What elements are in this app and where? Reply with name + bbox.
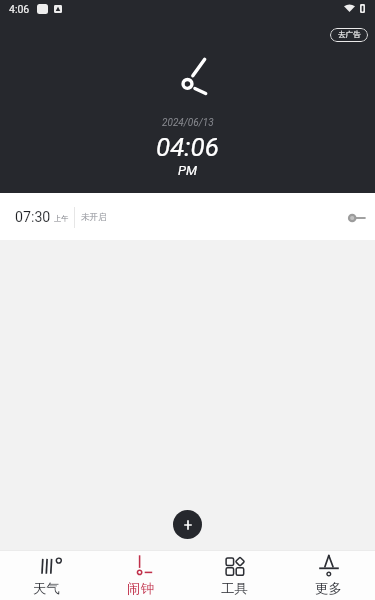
button[interactable]: 天气 (0, 551, 93, 600)
button[interactable]: 去广告 (330, 28, 368, 42)
staticText: 更多 (315, 580, 342, 597)
button[interactable]: 更多 (281, 551, 375, 600)
staticText: 去广告 (338, 30, 361, 40)
staticText: 上午 (54, 214, 69, 223)
staticText: 闹钟 (127, 580, 154, 597)
button[interactable]: 工具 (187, 551, 281, 600)
staticText: 4:06 (9, 3, 30, 15)
button[interactable]: 闹钟 (93, 551, 187, 600)
button[interactable]: Add alarm (173, 510, 202, 539)
staticText: 未开启 (81, 212, 107, 223)
staticText: 07:30 (15, 209, 51, 226)
staticText: PM (178, 163, 197, 178)
button[interactable]: 07:30 (0, 193, 375, 240)
staticText: 天气 (33, 580, 60, 597)
staticText: 工具 (221, 580, 248, 597)
button[interactable]: Alarm switch, off (344, 203, 366, 233)
staticText: 2024/06/13 (162, 117, 214, 129)
staticText: 04:06 (156, 132, 219, 162)
